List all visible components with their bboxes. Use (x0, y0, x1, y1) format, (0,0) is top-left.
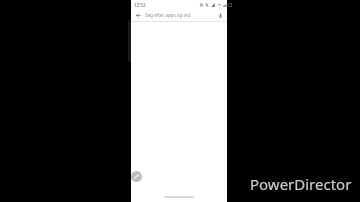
button[interactable]: Back (131, 9, 227, 21)
staticText: PowerDirector (250, 174, 352, 194)
staticText: 13:52 (134, 2, 146, 8)
staticText: Søg efter apps og ind (145, 12, 216, 18)
button[interactable]: Back (134, 11, 142, 19)
button[interactable]: Voice search (216, 11, 224, 19)
button[interactable]: Overlay assistant button (131, 171, 142, 182)
